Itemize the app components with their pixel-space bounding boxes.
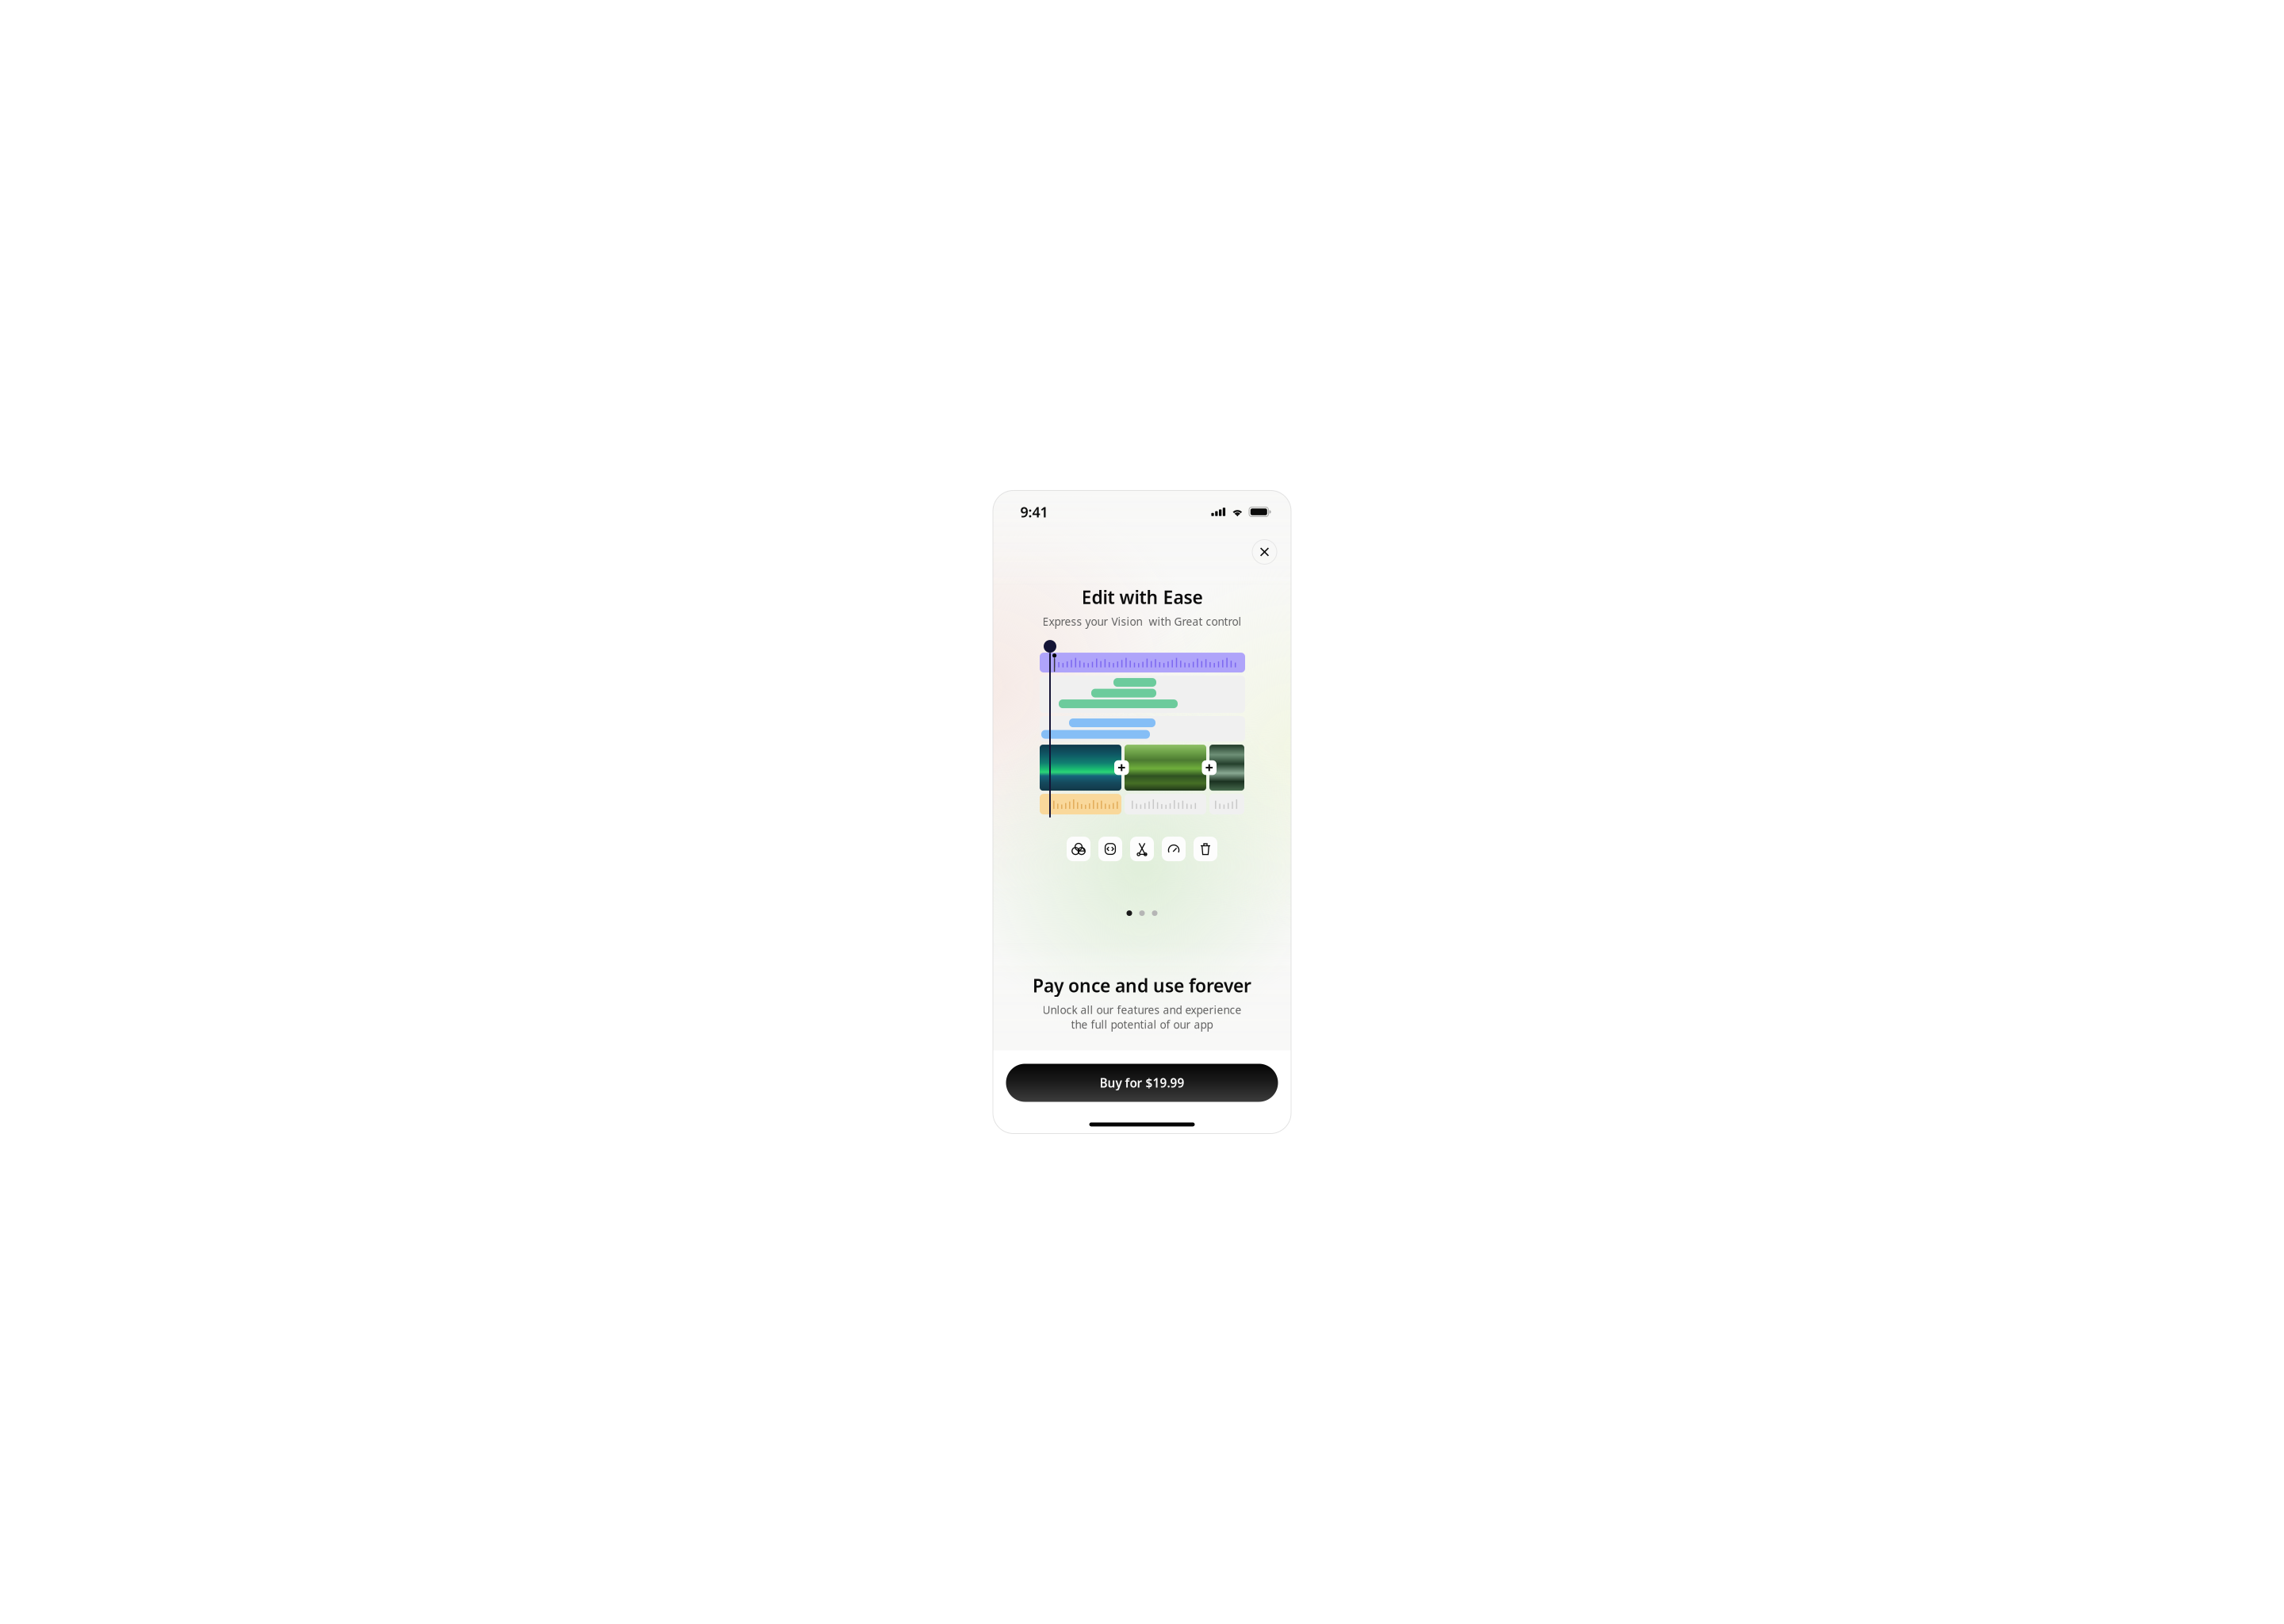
staticText: Express your Vision with Great control	[1042, 614, 1242, 629]
button[interactable]: Delete	[1194, 837, 1217, 861]
staticText: Edit with Ease	[1081, 585, 1203, 609]
button[interactable]: Close	[1252, 540, 1277, 564]
button[interactable]: Trim	[1098, 837, 1122, 861]
staticText: Pay once and use forever	[1033, 973, 1251, 998]
button[interactable]: Speed	[1162, 837, 1186, 861]
staticText: 9:41	[1020, 502, 1048, 521]
staticText: Unlock all our features and experience	[1042, 1002, 1242, 1017]
button[interactable]: Colour balance	[1067, 837, 1090, 861]
staticText: Buy for $19.99	[1100, 1075, 1184, 1091]
button[interactable]: Cut	[1130, 837, 1154, 861]
staticText: the full potential of our app	[1071, 1017, 1213, 1032]
button[interactable]: Buy for $19.99	[1006, 1064, 1278, 1102]
